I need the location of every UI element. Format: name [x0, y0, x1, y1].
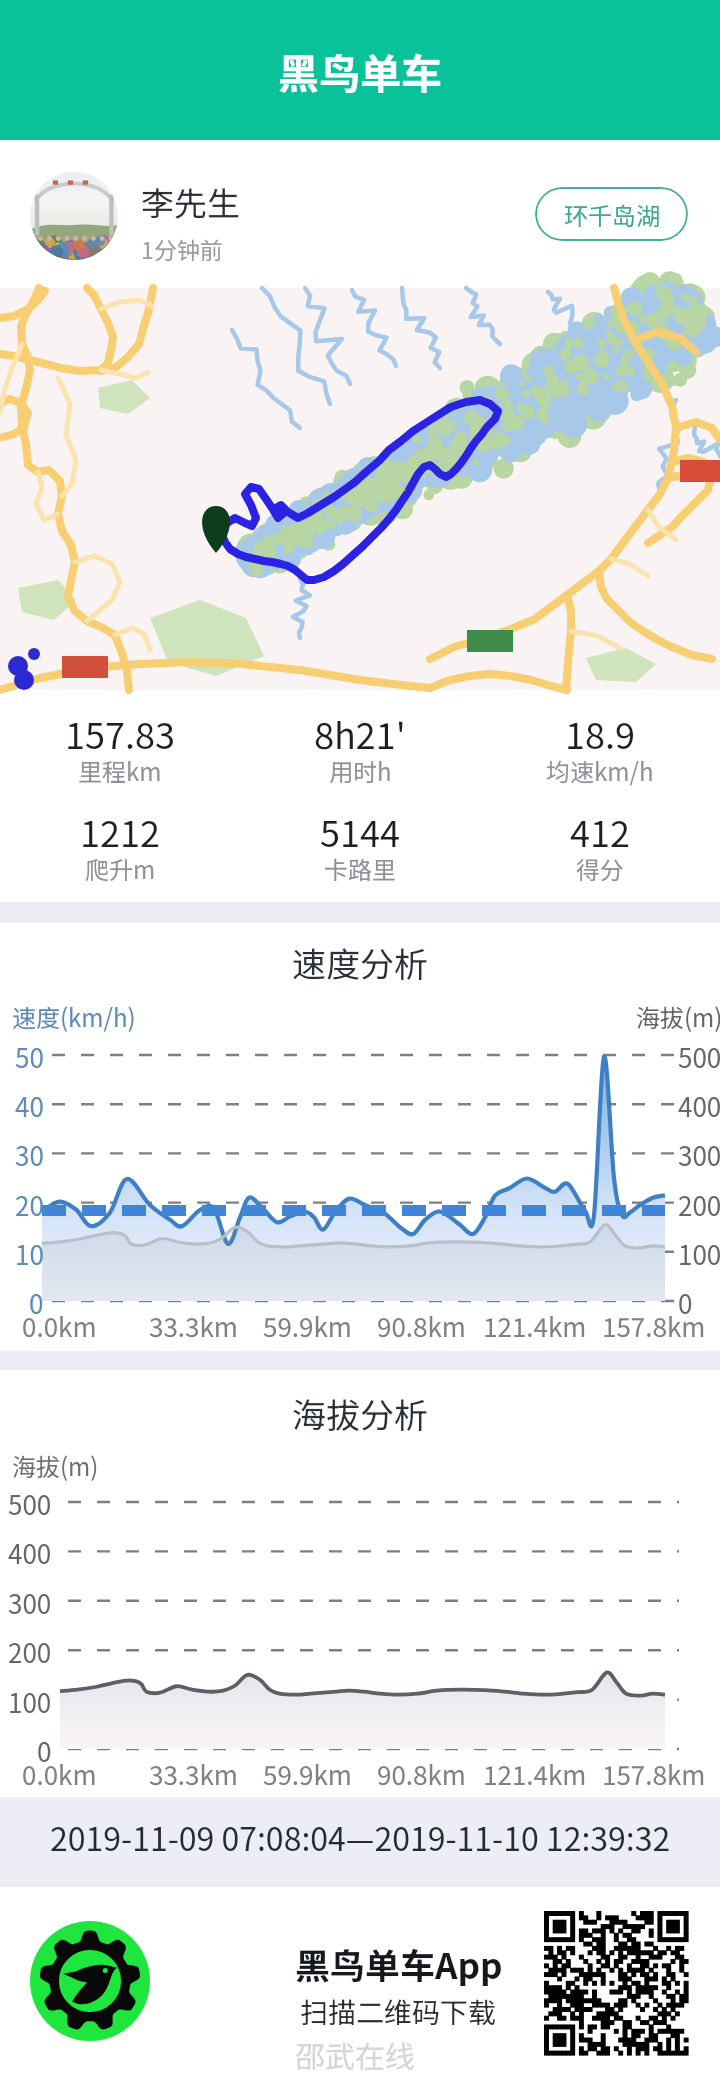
staticText: 33.3km	[149, 1755, 238, 1793]
staticText: 100	[8, 1683, 52, 1721]
staticText: 200	[8, 1633, 52, 1671]
staticText: 300	[8, 1584, 52, 1622]
staticText: 得分	[576, 851, 624, 886]
staticText: 59.9km	[263, 1307, 352, 1345]
staticText: 200	[678, 1186, 720, 1224]
staticText: 海拔(m)	[12, 1448, 99, 1483]
staticText: 33.3km	[149, 1307, 238, 1345]
staticText: 2019-11-09 07:08:04—2019-11-10 12:39:32	[50, 1814, 671, 1860]
staticText: 300	[678, 1136, 720, 1174]
staticText: 均速km/h	[546, 753, 654, 788]
staticText: 400	[678, 1087, 720, 1125]
staticText: 里程km	[78, 753, 162, 788]
button[interactable]: 环千岛湖	[535, 187, 688, 241]
staticText: 0	[678, 1284, 693, 1322]
staticText: 157.8km	[602, 1755, 706, 1793]
staticText: 100	[678, 1235, 720, 1273]
staticText: 1分钟前	[141, 232, 223, 265]
staticText: 用时h	[329, 753, 392, 788]
staticText: 爬升m	[85, 851, 156, 886]
staticText: 1212	[80, 805, 160, 857]
staticText: 157.83	[65, 707, 175, 759]
staticText: 30	[15, 1136, 44, 1174]
other: QR code	[544, 1911, 688, 2055]
staticText: 0.0km	[22, 1307, 97, 1345]
staticText: 0	[37, 1732, 52, 1770]
staticText: 400	[8, 1534, 52, 1572]
staticText: 卡路里	[324, 851, 396, 886]
staticText: 500	[8, 1485, 52, 1523]
staticText: 157.8km	[602, 1307, 706, 1345]
staticText: 5144	[320, 805, 400, 857]
staticText: 59.9km	[263, 1755, 352, 1793]
staticText: 海拔(m)	[636, 999, 720, 1034]
staticText: 0.0km	[22, 1755, 97, 1793]
staticText: 海拔分析	[292, 1389, 428, 1438]
staticText: 40	[15, 1087, 44, 1125]
staticText: 18.9	[565, 707, 635, 759]
staticText: 0	[29, 1284, 44, 1322]
staticText: 8h21'	[314, 707, 406, 759]
staticText: 黑鸟单车	[278, 41, 442, 100]
staticText: 速度分析	[292, 938, 428, 987]
staticText: 412	[570, 805, 630, 857]
staticText: 500	[678, 1038, 720, 1076]
staticText: 邵武在线	[295, 2033, 415, 2076]
staticText: 90.8km	[377, 1755, 466, 1793]
staticText: 121.4km	[483, 1307, 587, 1345]
staticText: 50	[15, 1038, 44, 1076]
staticText: 李先生	[141, 178, 240, 226]
staticText: 121.4km	[483, 1755, 587, 1793]
staticText: 黑鸟单车App	[295, 1938, 503, 1989]
staticText: 90.8km	[377, 1307, 466, 1345]
other: App logo	[30, 1921, 150, 2041]
staticText: 20	[15, 1186, 44, 1224]
staticText: 10	[15, 1235, 44, 1273]
staticText: 速度(km/h)	[12, 999, 136, 1034]
staticText: 环千岛湖	[564, 197, 660, 232]
staticText: 扫描二维码下载	[300, 1991, 497, 2032]
